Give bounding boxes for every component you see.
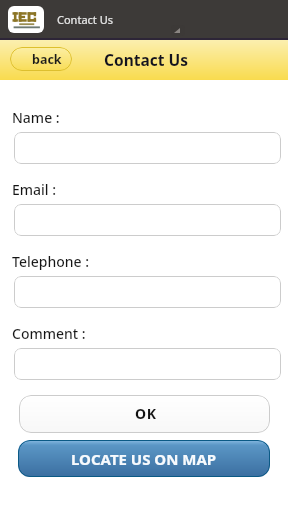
staticText: back [32, 51, 62, 68]
button[interactable]: back [10, 47, 72, 71]
button[interactable]: LOCATE US ON MAP [18, 440, 270, 477]
button[interactable]: Email : [14, 204, 281, 236]
other: Resize [171, 25, 185, 36]
button[interactable]: IEC logo [8, 6, 44, 33]
staticText: Contact Us [57, 12, 113, 27]
staticText: Comment : [12, 324, 86, 343]
staticText: Contact Us [104, 49, 188, 70]
staticText: Name : [12, 108, 60, 127]
staticText: Telephone : [12, 252, 90, 271]
button[interactable]: OK [19, 395, 270, 433]
staticText: Email : [12, 180, 57, 199]
button[interactable]: Comment : [14, 348, 281, 380]
button[interactable]: Telephone : [14, 276, 281, 308]
staticText: LOCATE US ON MAP [71, 449, 217, 469]
button[interactable]: Name : [14, 132, 281, 164]
staticText: OK [135, 404, 157, 423]
